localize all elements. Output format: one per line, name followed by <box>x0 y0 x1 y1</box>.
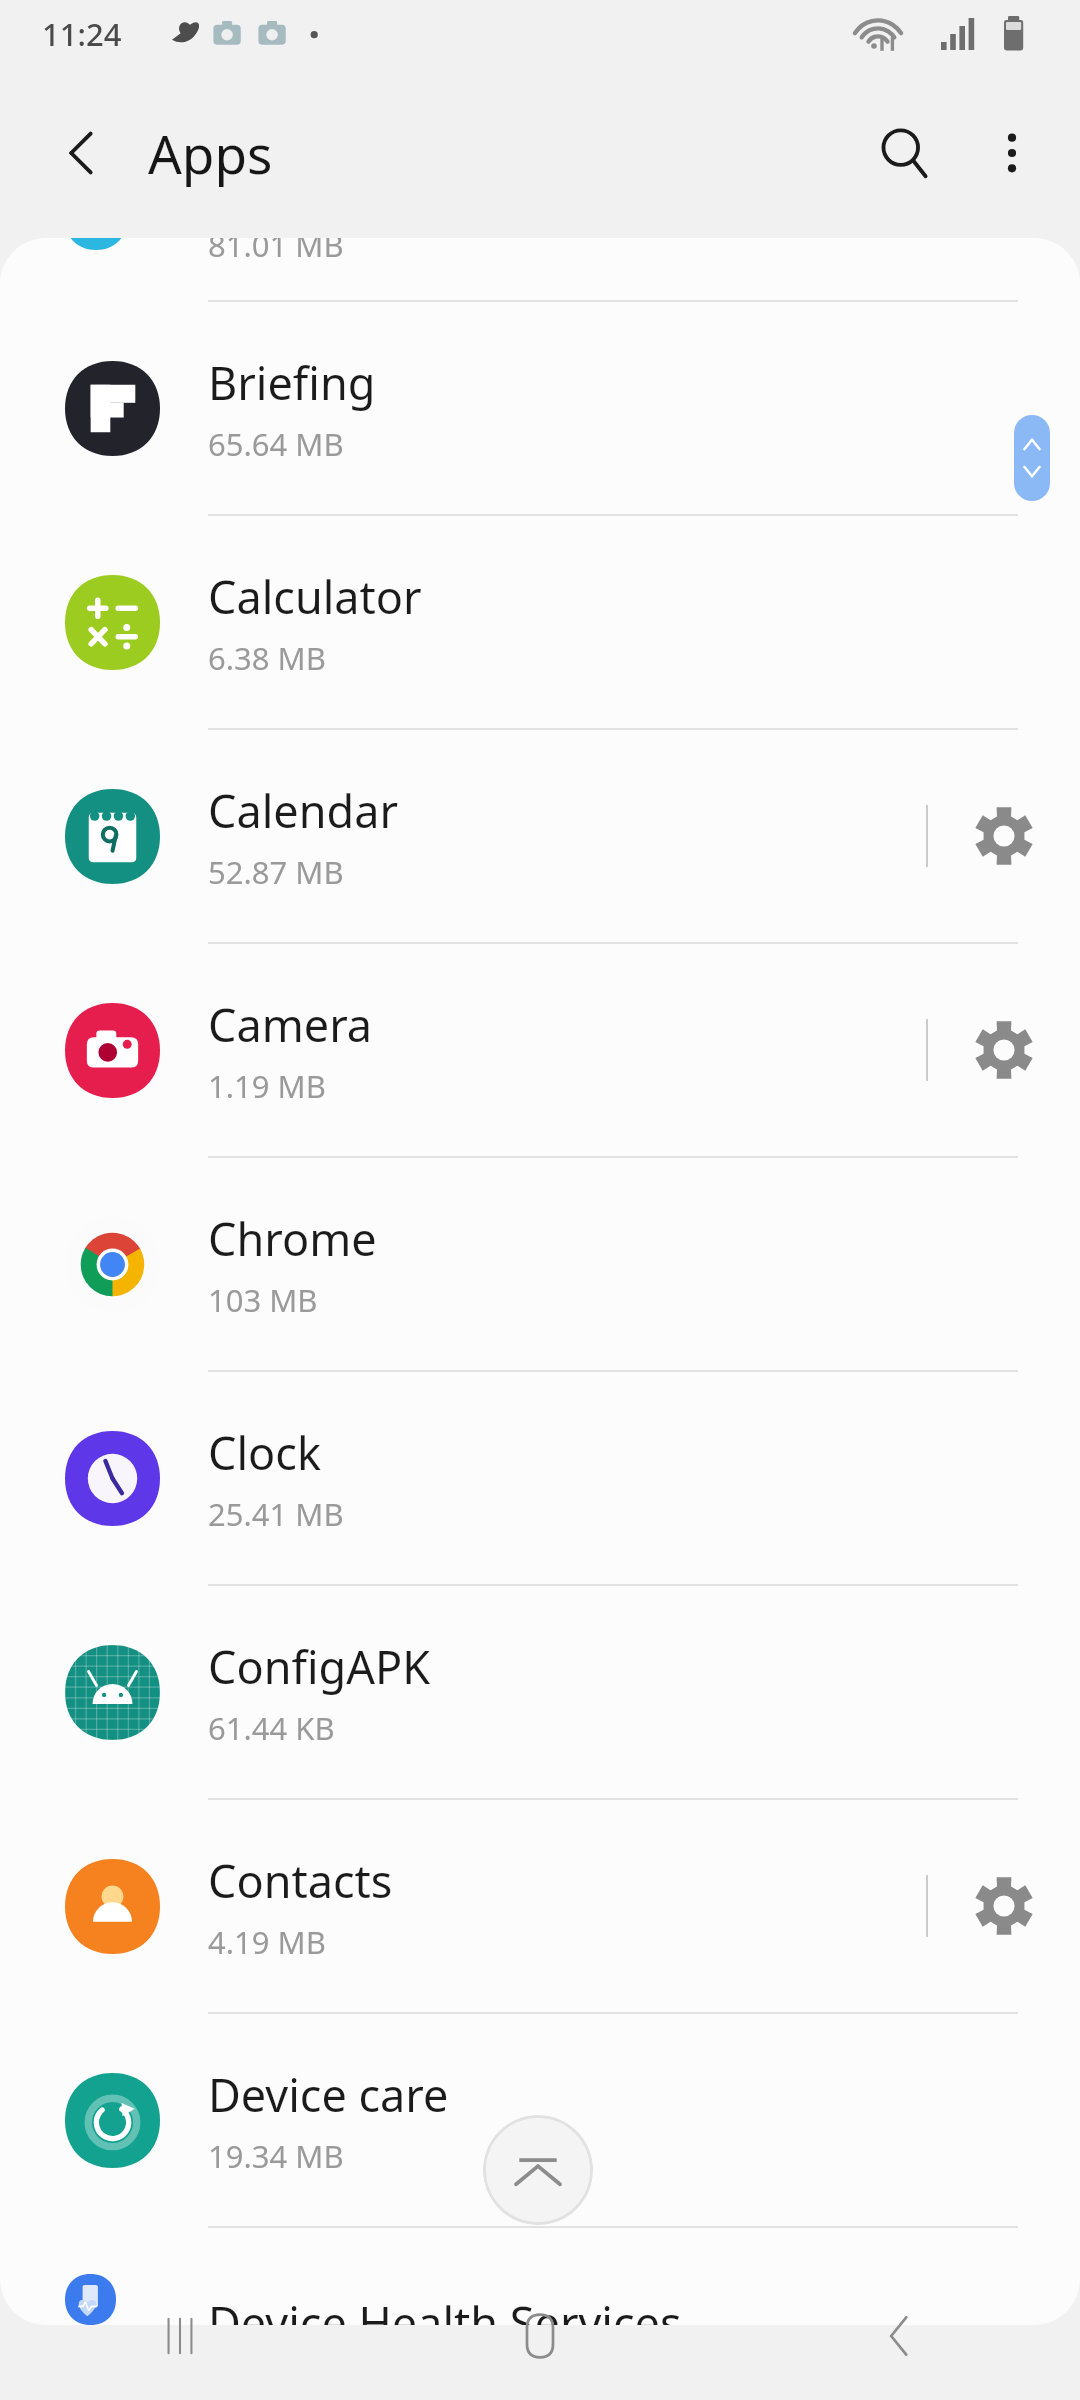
staticText: ConfigAPK <box>208 1636 431 1697</box>
staticText: 61.44 KB <box>208 1707 335 1749</box>
staticText: Camera <box>208 994 373 1055</box>
staticText: Calculator <box>208 566 422 627</box>
staticText: 25.41 MB <box>208 1493 344 1535</box>
staticText: 65.64 MB <box>208 423 344 465</box>
button[interactable]: Chrome <box>0 1158 1080 1370</box>
button[interactable]: Scroll bar <box>1014 415 1050 501</box>
button[interactable]: Device care <box>0 2014 1080 2226</box>
staticText: 52.87 MB <box>208 851 344 893</box>
staticText: Calendar <box>208 780 398 841</box>
staticText: 1.19 MB <box>208 1065 326 1107</box>
staticText: Chrome <box>208 1208 377 1269</box>
button[interactable]: ConfigAPK <box>0 1586 1080 1798</box>
button[interactable]: Calculator <box>0 516 1080 728</box>
button[interactable]: More options <box>960 101 1064 205</box>
button[interactable]: Navigate up <box>30 101 134 205</box>
button[interactable]: Camera <box>0 944 1080 1156</box>
staticText: Apps <box>148 117 273 189</box>
button[interactable]: Calendar <box>0 730 1080 942</box>
button[interactable]: Search <box>848 97 960 209</box>
staticText: 4.19 MB <box>208 1921 326 1963</box>
button[interactable]: Recent apps <box>0 2272 360 2400</box>
staticText: Device Health Services <box>208 2292 682 2325</box>
button[interactable]: Device Health Services <box>0 2228 1080 2325</box>
staticText: 81.01 MB <box>208 238 344 266</box>
button[interactable]: Home <box>360 2272 720 2400</box>
button[interactable]: App settings <box>928 1800 1080 2012</box>
staticText: Briefing <box>208 352 376 413</box>
button[interactable]: App settings <box>928 944 1080 1156</box>
staticText: 6.38 MB <box>208 637 326 679</box>
button[interactable]: Clock <box>0 1372 1080 1584</box>
staticText: Clock <box>208 1422 321 1483</box>
button[interactable]: Back <box>720 2272 1080 2400</box>
staticText: 103 MB <box>208 1279 318 1321</box>
button[interactable]: Briefing <box>0 302 1080 514</box>
staticText: 11:24 <box>42 13 122 55</box>
button[interactable]: App settings <box>928 730 1080 942</box>
button[interactable]: Contacts <box>0 1800 1080 2012</box>
staticText: Device care <box>208 2064 449 2125</box>
staticText: Contacts <box>208 1850 393 1911</box>
staticText: 19.34 MB <box>208 2135 344 2177</box>
button[interactable]: Scroll to top <box>483 2115 593 2225</box>
